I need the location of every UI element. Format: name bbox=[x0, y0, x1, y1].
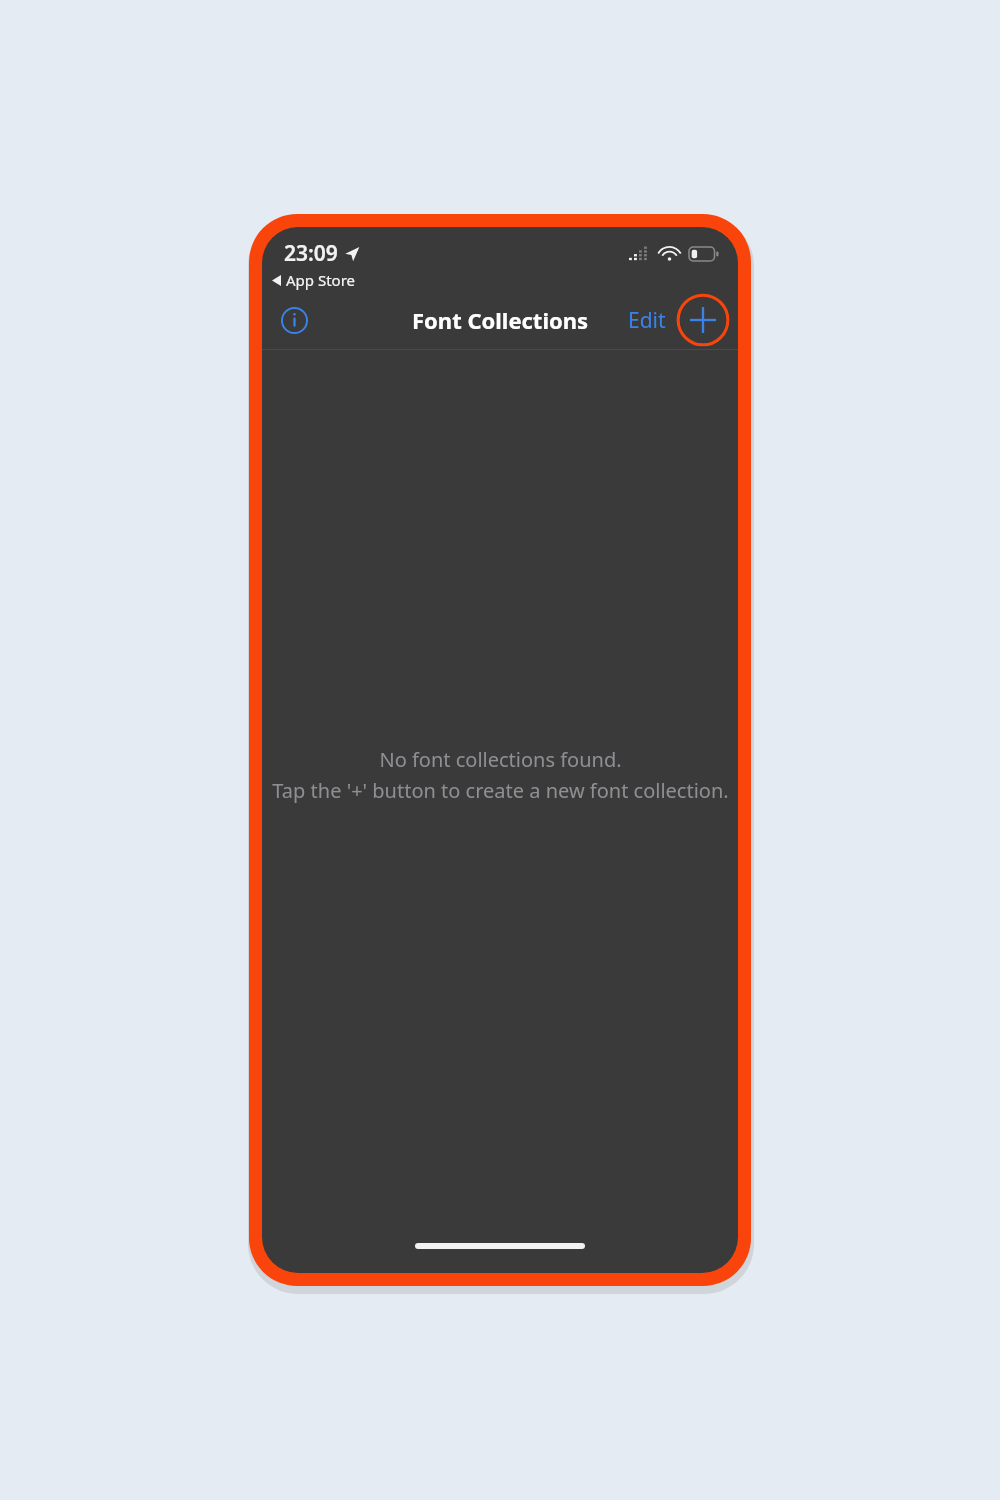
staticText: Edit bbox=[628, 306, 666, 335]
staticText: No font collections found. bbox=[379, 746, 622, 773]
button[interactable]: Information bbox=[272, 298, 316, 342]
button[interactable]: Edit bbox=[622, 298, 672, 343]
staticText: Tap the '+' button to create a new font … bbox=[272, 777, 729, 804]
staticText: App Store bbox=[286, 270, 356, 290]
button[interactable]: Add font collection bbox=[677, 294, 729, 346]
staticText: 23:09 bbox=[284, 239, 338, 268]
staticText: Font Collections bbox=[412, 305, 589, 335]
